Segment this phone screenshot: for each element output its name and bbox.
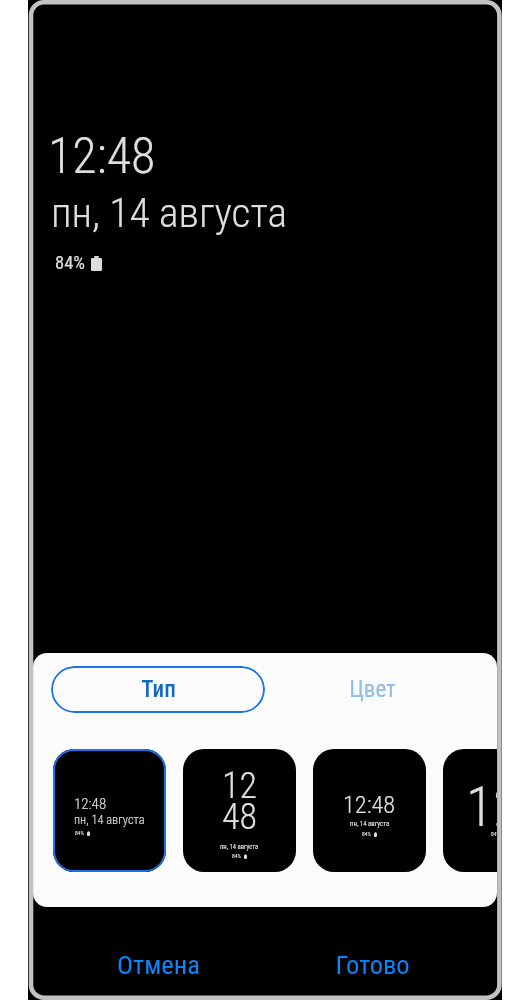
staticText: 48 [222, 796, 258, 838]
staticText: 12:48 [74, 795, 107, 813]
staticText: пн, 14 августа [220, 843, 259, 851]
button[interactable]: 12 [183, 749, 296, 872]
staticText: Отмена [117, 949, 200, 980]
button[interactable]: Готово [265, 907, 479, 1000]
staticText: пн, 14 августа [74, 812, 145, 827]
staticText: Тип [141, 676, 176, 703]
button[interactable]: Отмена [51, 907, 265, 1000]
staticText: 84% [75, 830, 85, 837]
staticText: пн, 14 августа [51, 188, 288, 237]
button[interactable]: 12:48 [53, 749, 166, 872]
staticText: 84% [55, 252, 85, 274]
staticText: Готово [335, 949, 410, 980]
staticText: Цвет [349, 676, 396, 703]
staticText: пн, 14 августа [350, 820, 390, 828]
button[interactable]: 12:48 [443, 749, 497, 872]
button[interactable]: Цвет [265, 666, 479, 713]
button[interactable]: Тип [51, 666, 265, 713]
staticText: 84% [362, 831, 372, 838]
staticText: 84% [232, 853, 242, 860]
staticText: 12:48 [48, 127, 156, 186]
staticText: 12:48 [466, 775, 497, 840]
button[interactable]: 12:48 [313, 749, 426, 872]
staticText: 84% [491, 831, 497, 838]
staticText: 12 [222, 765, 258, 807]
staticText: 12:48 [343, 790, 396, 818]
